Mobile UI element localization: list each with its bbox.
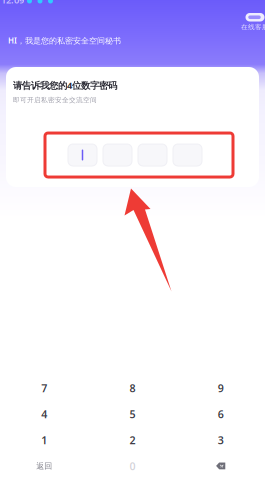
staticText: 即可开启私密安全交流空间 xyxy=(13,96,97,104)
button[interactable]: Delete xyxy=(177,453,265,479)
staticText: 请告诉我您的4位数字密码 xyxy=(13,79,117,91)
button[interactable]: 8 xyxy=(88,375,177,401)
button[interactable]: 1 xyxy=(0,427,88,453)
staticText: 在线客服 xyxy=(241,23,265,31)
staticText: 0 xyxy=(129,459,135,473)
staticText: 5 xyxy=(129,407,135,421)
staticText: HI，我是您的私密安全空间秘书 xyxy=(8,35,121,46)
button[interactable]: 7 xyxy=(0,375,88,401)
button[interactable]: 4 xyxy=(0,401,88,427)
button[interactable]: 5 xyxy=(88,401,177,427)
staticText: 6 xyxy=(218,407,224,421)
staticText: 7 xyxy=(41,381,47,395)
button[interactable]: 9 xyxy=(177,375,265,401)
staticText: 9 xyxy=(218,381,224,395)
button[interactable]: 0 xyxy=(88,453,177,479)
staticText: 8 xyxy=(129,381,135,395)
button[interactable]: 6 xyxy=(177,401,265,427)
staticText: 返回 xyxy=(36,461,52,471)
button[interactable]: 2 xyxy=(88,427,177,453)
button[interactable]: 返回 xyxy=(0,453,88,479)
staticText: 1 xyxy=(41,433,47,447)
staticText: 4 xyxy=(41,407,47,421)
button[interactable]: Customer service xyxy=(241,13,265,31)
staticText: 2 xyxy=(129,433,135,447)
staticText: 12:09 xyxy=(1,0,24,6)
button[interactable]: 3 xyxy=(177,427,265,453)
staticText: 3 xyxy=(218,433,224,447)
